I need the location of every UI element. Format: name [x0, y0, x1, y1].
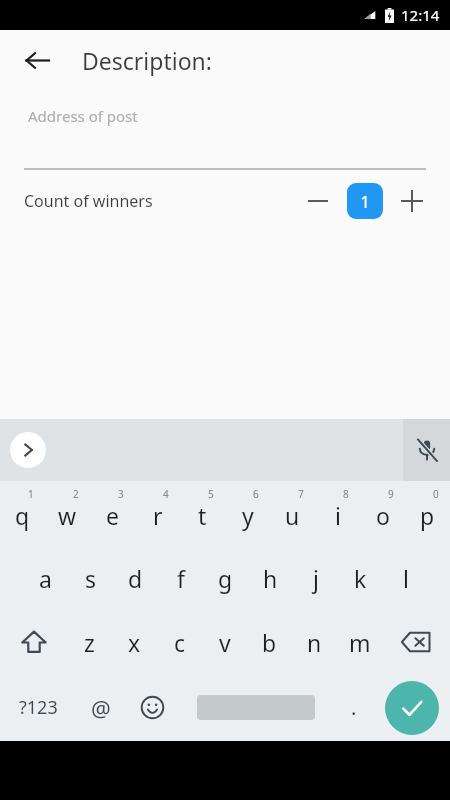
button[interactable]: f	[158, 546, 203, 610]
button[interactable]: Emoji	[126, 674, 178, 741]
staticText: ?123	[19, 695, 58, 720]
button[interactable]: z	[67, 610, 112, 674]
button[interactable]: 1	[0, 481, 45, 546]
staticText: v	[219, 627, 231, 658]
staticText: p	[420, 500, 435, 531]
button[interactable]: Decrease	[298, 181, 338, 221]
staticText: r	[153, 500, 163, 531]
button[interactable]: @	[76, 674, 126, 741]
button[interactable]: 8	[315, 481, 360, 546]
staticText: f	[177, 563, 185, 594]
button[interactable]: Voice input off	[403, 419, 450, 481]
button[interactable]: 6	[225, 481, 270, 546]
button[interactable]: b	[247, 610, 292, 674]
staticText: l	[403, 563, 409, 594]
staticText: 1	[28, 487, 34, 501]
staticText: s	[85, 563, 97, 594]
button[interactable]: c	[157, 610, 202, 674]
staticText: a	[39, 563, 52, 594]
staticText: 9	[388, 487, 394, 501]
button[interactable]: 0	[405, 481, 450, 546]
staticText: 5	[208, 487, 214, 501]
staticText: 8	[343, 487, 349, 501]
staticText: n	[307, 627, 322, 658]
button[interactable]: a	[22, 546, 68, 610]
staticText: z	[84, 627, 95, 658]
staticText: u	[285, 500, 300, 531]
button[interactable]: ?123	[0, 674, 76, 741]
button[interactable]: .	[334, 674, 374, 741]
staticText: 4	[163, 487, 169, 501]
button[interactable]: m	[337, 610, 382, 674]
staticText: q	[15, 500, 30, 531]
staticText: h	[263, 563, 278, 594]
button[interactable]: 5	[180, 481, 225, 546]
button[interactable]: Back	[14, 37, 60, 83]
staticText: c	[174, 627, 186, 658]
button[interactable]: k	[338, 546, 383, 610]
staticText: k	[354, 563, 367, 594]
staticText: e	[106, 500, 119, 531]
staticText: Count of winners	[24, 190, 153, 212]
staticText: t	[198, 500, 207, 531]
button[interactable]: g	[203, 546, 248, 610]
button[interactable]: s	[68, 546, 113, 610]
staticText: 0	[433, 487, 439, 501]
staticText: 12:14	[401, 5, 440, 25]
staticText: @	[91, 693, 111, 723]
staticText: m	[349, 627, 371, 658]
staticText: Address of post	[28, 106, 138, 126]
staticText: 3	[118, 487, 124, 501]
button[interactable]: 1	[347, 183, 383, 219]
button[interactable]: h	[248, 546, 293, 610]
staticText: .	[351, 694, 357, 721]
staticText: i	[335, 500, 341, 531]
staticText: Description:	[82, 45, 212, 76]
staticText: 1	[360, 190, 370, 213]
staticText: j	[313, 563, 319, 594]
button[interactable]: v	[202, 610, 247, 674]
staticText: g	[218, 563, 233, 594]
staticText: w	[58, 500, 77, 531]
button[interactable]: 7	[270, 481, 315, 546]
button[interactable]: l	[383, 546, 428, 610]
staticText: o	[376, 500, 390, 531]
button[interactable]: j	[293, 546, 338, 610]
button[interactable]: 4	[135, 481, 180, 546]
staticText: y	[242, 500, 254, 531]
button[interactable]: Shift	[0, 610, 67, 674]
staticText: 6	[253, 487, 259, 501]
button[interactable]: Increase	[392, 181, 432, 221]
staticText: b	[262, 627, 277, 658]
button[interactable]: d	[113, 546, 158, 610]
button[interactable]: Backspace	[382, 610, 450, 674]
staticText: d	[128, 563, 143, 594]
button[interactable]: 9	[360, 481, 405, 546]
staticText: x	[128, 627, 141, 658]
button[interactable]: More suggestions	[10, 432, 46, 468]
button[interactable]: x	[112, 610, 157, 674]
staticText: 7	[298, 487, 304, 501]
staticText: 2	[73, 487, 79, 501]
button[interactable]: n	[292, 610, 337, 674]
button[interactable]: 3	[90, 481, 135, 546]
button[interactable]: 2	[45, 481, 90, 546]
button[interactable]: Enter	[385, 681, 439, 735]
